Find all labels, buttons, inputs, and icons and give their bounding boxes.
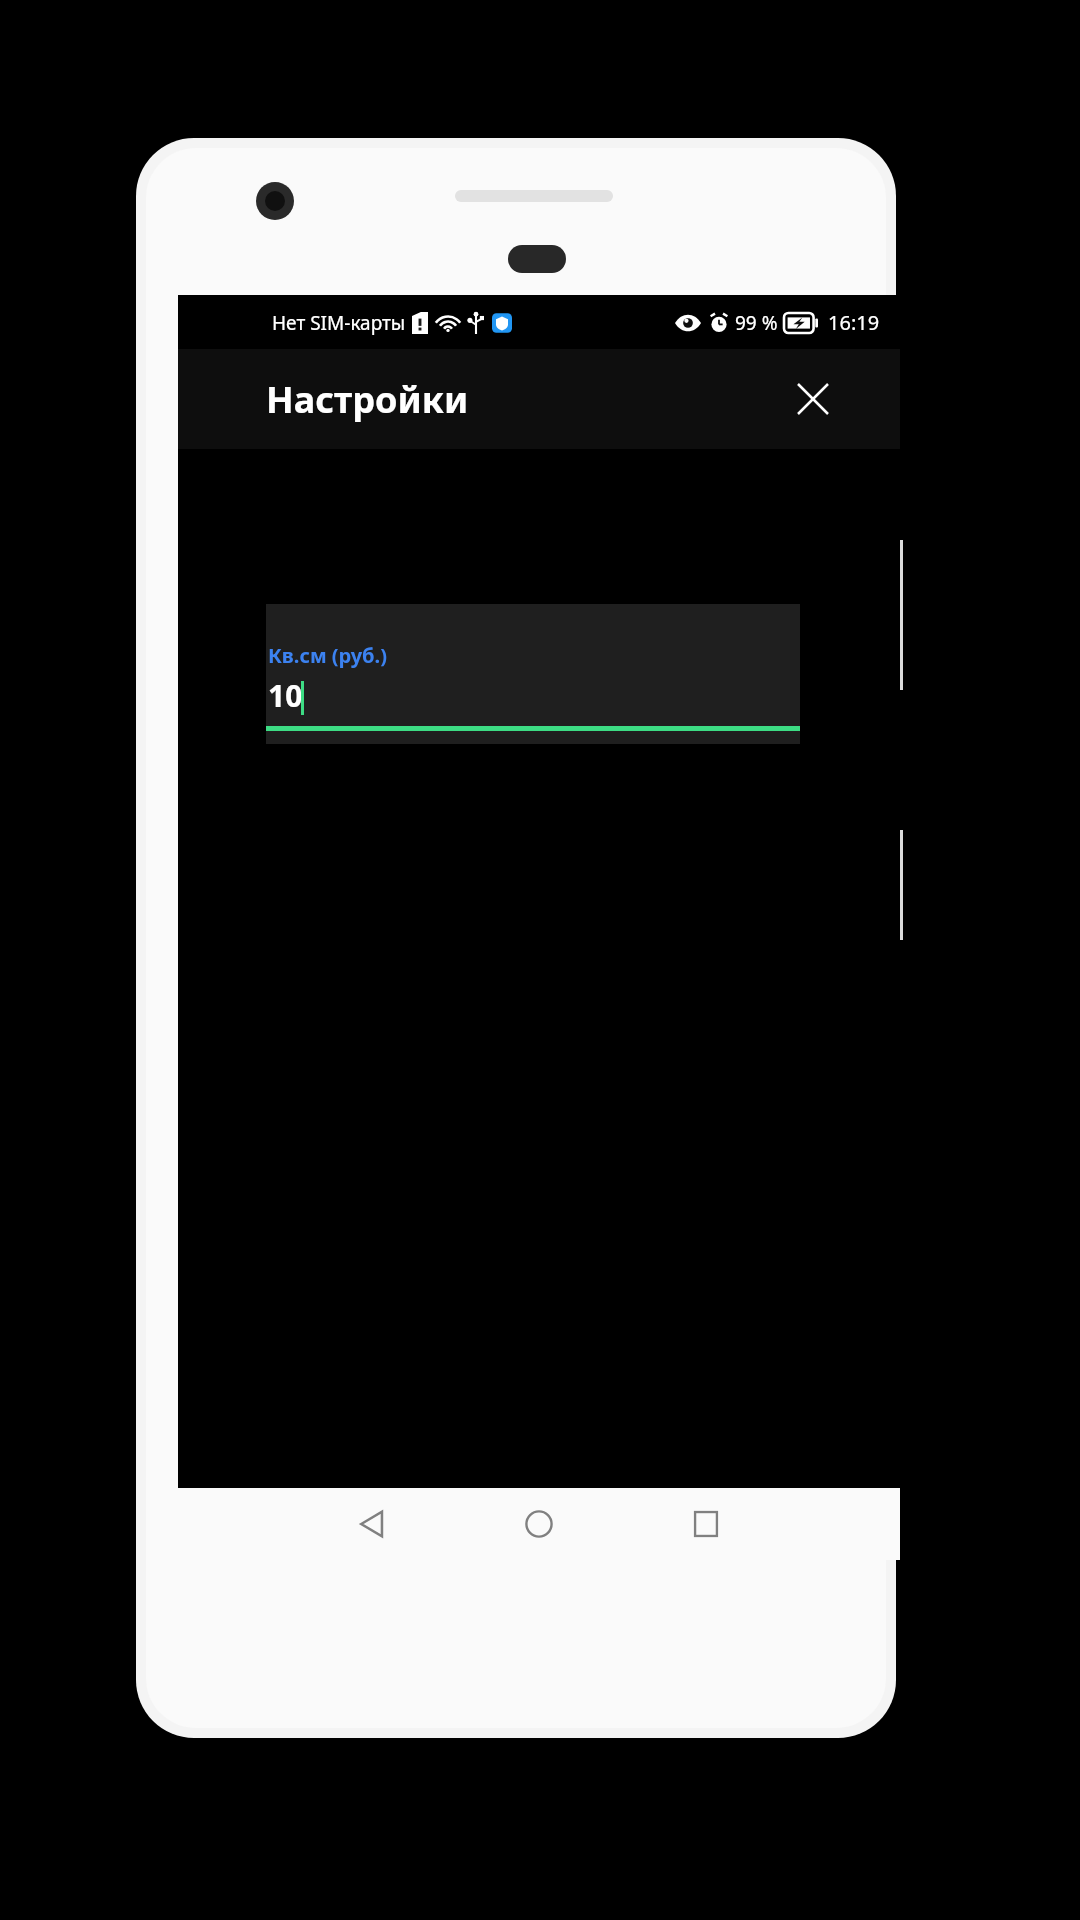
staticText: Настройки	[266, 375, 469, 424]
button[interactable]: Recent apps	[674, 1492, 738, 1556]
staticText: 16:19	[828, 309, 880, 336]
staticText: Нет SIM-карты	[272, 310, 406, 336]
button[interactable]: Back	[341, 1492, 405, 1556]
staticText: Кв.см (руб.)	[268, 642, 387, 669]
button[interactable]: Close	[784, 370, 842, 428]
button[interactable]: Кв.см (руб.)	[266, 604, 800, 744]
staticText: 10	[268, 675, 303, 716]
staticText: 99 %	[735, 310, 778, 336]
button[interactable]: Home	[507, 1492, 571, 1556]
